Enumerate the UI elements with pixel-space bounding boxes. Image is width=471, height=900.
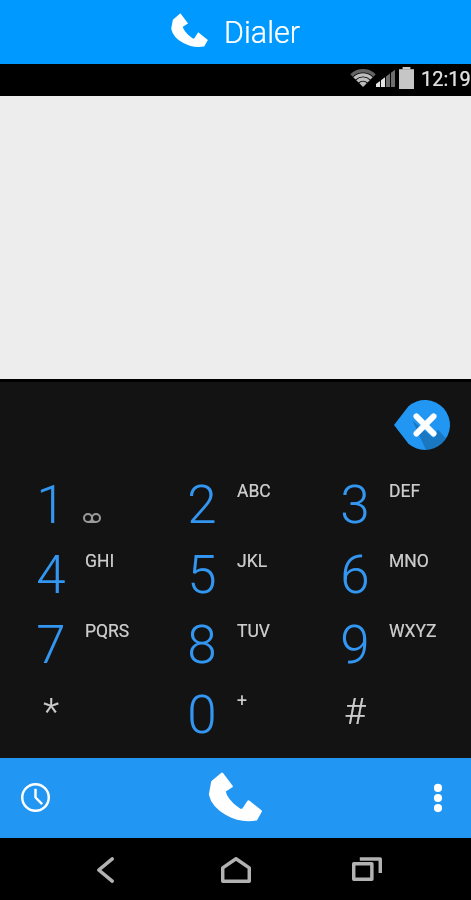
button[interactable] bbox=[305, 680, 457, 750]
button[interactable]: Recents bbox=[331, 835, 403, 897]
button[interactable]: Back bbox=[69, 838, 141, 900]
button[interactable]: Call history bbox=[0, 758, 157, 838]
staticText: 4 bbox=[36, 544, 66, 606]
button[interactable]: Home bbox=[200, 838, 272, 900]
staticText: 5 bbox=[187, 544, 217, 606]
staticText: 2 bbox=[187, 474, 217, 536]
button[interactable] bbox=[305, 540, 457, 610]
staticText: 7 bbox=[36, 614, 66, 676]
button[interactable] bbox=[1, 610, 153, 680]
button[interactable] bbox=[152, 470, 304, 540]
staticText: DEF bbox=[389, 481, 421, 502]
button[interactable]: Backspace bbox=[394, 400, 450, 450]
button[interactable] bbox=[305, 610, 457, 680]
staticText: Dialer bbox=[224, 15, 301, 51]
button[interactable]: Call bbox=[157, 758, 314, 838]
staticText: 0 bbox=[187, 684, 217, 746]
staticText: WXYZ bbox=[389, 621, 437, 642]
button[interactable] bbox=[152, 680, 304, 750]
staticText: TUV bbox=[237, 621, 270, 642]
staticText: 8 bbox=[187, 614, 217, 676]
staticText: GHI bbox=[85, 551, 115, 572]
button[interactable] bbox=[1, 680, 153, 750]
button[interactable]: More options bbox=[314, 758, 471, 838]
staticText: 9 bbox=[340, 614, 370, 676]
staticText: 1 bbox=[36, 474, 66, 536]
staticText: ABC bbox=[237, 481, 271, 502]
staticText: JKL bbox=[237, 551, 268, 572]
staticText: * bbox=[43, 690, 59, 733]
staticText: 3 bbox=[340, 474, 370, 536]
staticText: + bbox=[237, 691, 247, 712]
button[interactable] bbox=[1, 540, 153, 610]
staticText: 12:19 bbox=[421, 67, 471, 90]
staticText: # bbox=[344, 690, 366, 733]
staticText: 6 bbox=[340, 544, 370, 606]
staticText: PQRS bbox=[85, 621, 130, 642]
button[interactable] bbox=[305, 470, 457, 540]
button[interactable] bbox=[152, 540, 304, 610]
button[interactable] bbox=[1, 470, 153, 540]
button[interactable] bbox=[152, 610, 304, 680]
staticText: MNO bbox=[389, 551, 429, 572]
